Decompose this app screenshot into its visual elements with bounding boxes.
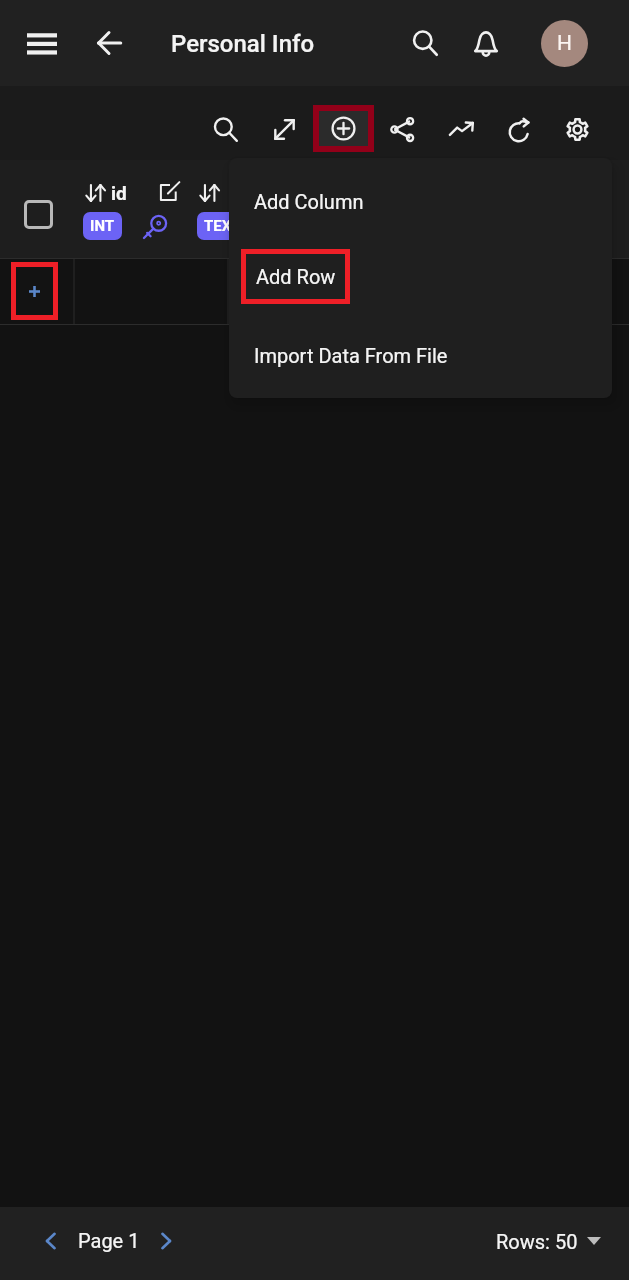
button[interactable]: Back	[85, 19, 133, 67]
button[interactable]: Refresh	[495, 105, 543, 153]
button[interactable]: Previous page	[33, 1223, 69, 1259]
button[interactable]: Add Column	[229, 158, 612, 244]
button[interactable]: Import Data From File	[229, 313, 612, 398]
button[interactable]: Add Row	[246, 254, 345, 299]
button[interactable]: Select all	[24, 200, 53, 229]
staticText: TEXT	[204, 217, 241, 235]
button[interactable]: Rows: 50	[496, 1221, 601, 1261]
button[interactable]: Profile	[541, 20, 588, 67]
button[interactable]: Add row	[16, 267, 53, 315]
staticText: Rows: 50	[496, 1230, 578, 1253]
button[interactable]: Search table	[201, 105, 249, 153]
staticText: Personal Info	[171, 30, 315, 58]
staticText: Page 1	[78, 1229, 140, 1252]
button[interactable]: Trends	[437, 105, 485, 153]
staticText: Add Column	[254, 190, 364, 213]
button[interactable]: Menu	[18, 19, 66, 67]
staticText: id	[111, 182, 127, 204]
button[interactable]: Search	[401, 19, 449, 67]
staticText: Add Row	[256, 265, 336, 288]
button[interactable]: Add	[319, 111, 368, 146]
button[interactable]: Notifications	[462, 19, 510, 67]
button[interactable]: Settings	[553, 105, 601, 153]
button[interactable]: Next page	[148, 1223, 184, 1259]
button[interactable]: Edit column id	[155, 177, 185, 207]
button[interactable]: Expand	[260, 105, 308, 153]
staticText: H	[557, 31, 572, 56]
staticText: INT	[90, 217, 115, 235]
staticText: Import Data From File	[254, 344, 448, 367]
button[interactable]: Share	[378, 105, 426, 153]
